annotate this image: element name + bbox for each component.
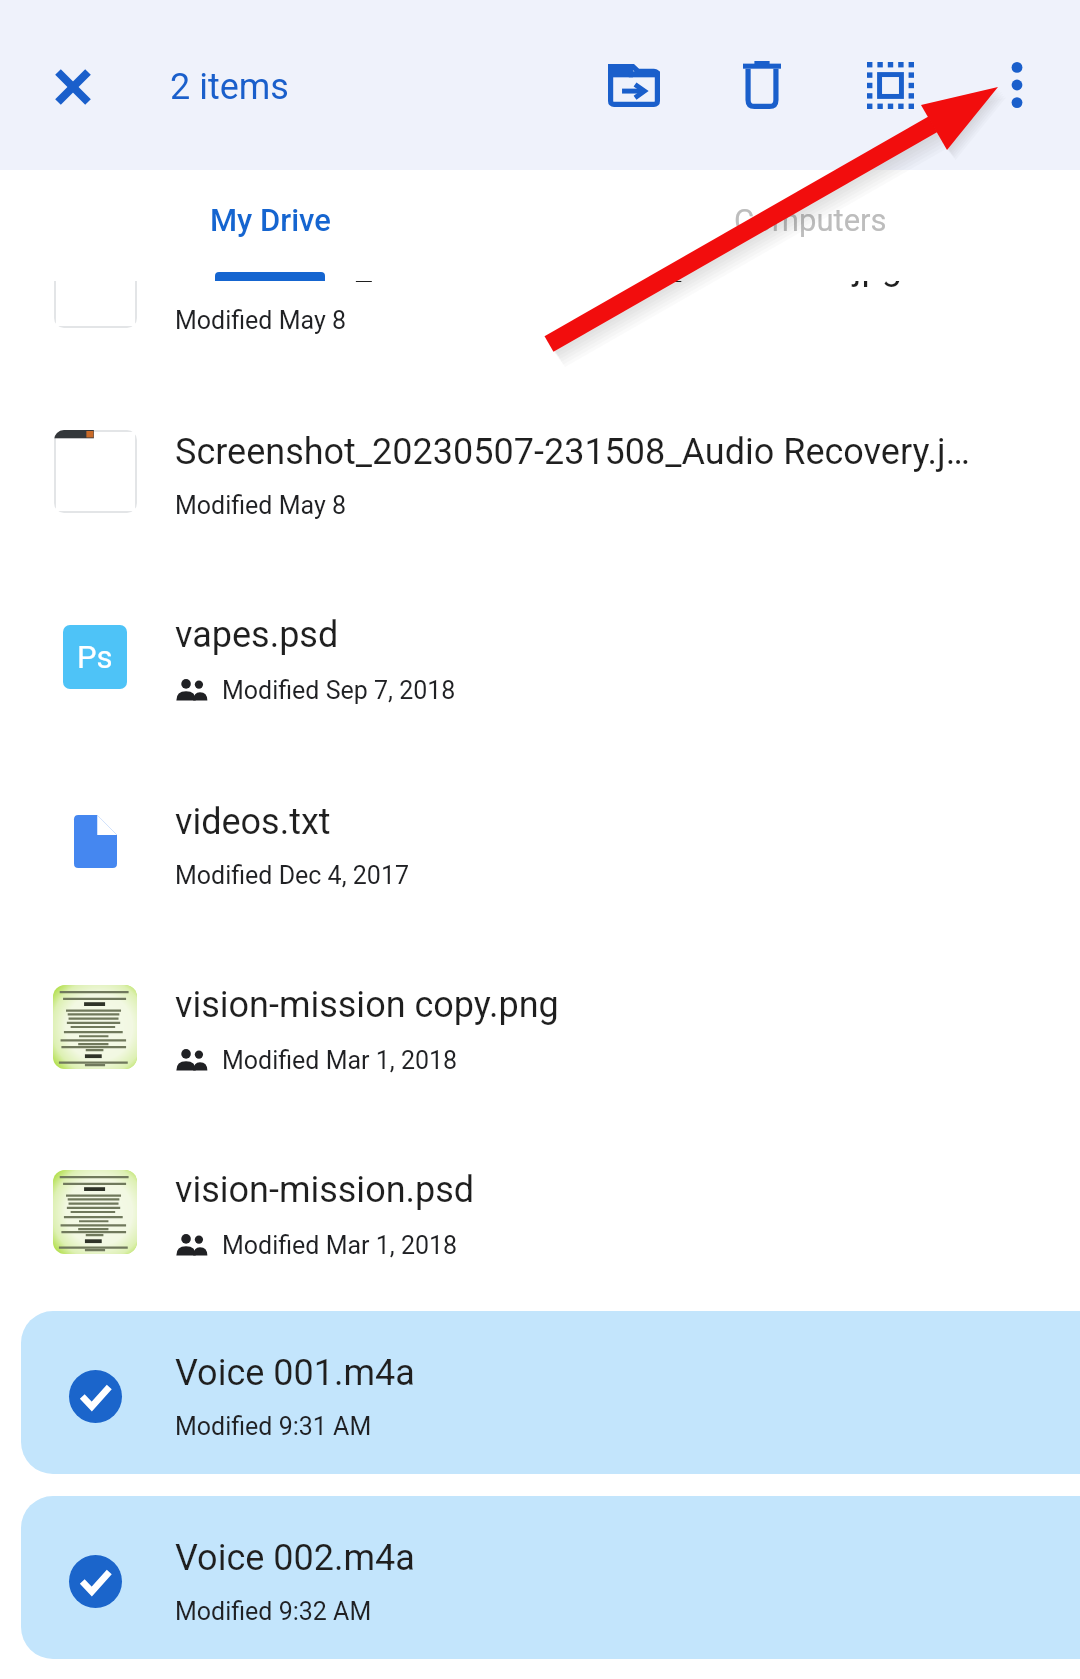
staticText: Modified Mar 1, 2018 [222,1231,458,1260]
staticText: Modified May 8 [175,491,346,520]
button[interactable]: Ps [0,564,1080,749]
button[interactable]: Screenshot_20230507-231508_Audio Recover… [0,379,1080,564]
staticText: vapes.psd [175,614,339,656]
button[interactable]: Close selection [17,31,129,143]
staticText: Computers [734,202,887,238]
staticText: 2 items [170,66,289,108]
staticText: Modified 9:32 AM [175,1597,372,1626]
staticText: vision-mission copy.png [175,984,559,1026]
button[interactable]: videos.txt [0,749,1080,934]
staticText: Modified Dec 4, 2017 [175,861,409,890]
button[interactable]: Computers [540,170,1080,281]
button[interactable]: Voice 002.m4a [21,1496,1080,1659]
button[interactable]: vision-mission.psd [0,1119,1080,1304]
staticText: Screenshot_20230507-231508_Audio Recover… [175,431,970,473]
staticText: Modified May 8 [175,306,346,335]
staticText: Modified Mar 1, 2018 [222,1046,458,1075]
button[interactable]: Delete [706,29,818,141]
staticText: Voice 001.m4a [175,1352,415,1394]
staticText: Modified Sep 7, 2018 [222,676,456,705]
button[interactable]: vision-mission copy.png [0,934,1080,1119]
button[interactable]: Voice 001.m4a [21,1311,1080,1474]
staticText: Screenshot_20230506-104233_Audio Rec.jpg [175,246,902,288]
button[interactable]: My Drive [0,170,540,281]
staticText: vision-mission.psd [175,1169,475,1211]
staticText: Modified 9:31 AM [175,1412,372,1441]
button[interactable]: More options [961,29,1073,141]
staticText: Voice 002.m4a [175,1537,415,1579]
button[interactable]: Move to folder [578,29,690,141]
button[interactable]: Select all [834,29,946,141]
staticText: videos.txt [175,801,331,843]
staticText: My Drive [210,202,331,238]
staticText: Ps [77,639,113,675]
